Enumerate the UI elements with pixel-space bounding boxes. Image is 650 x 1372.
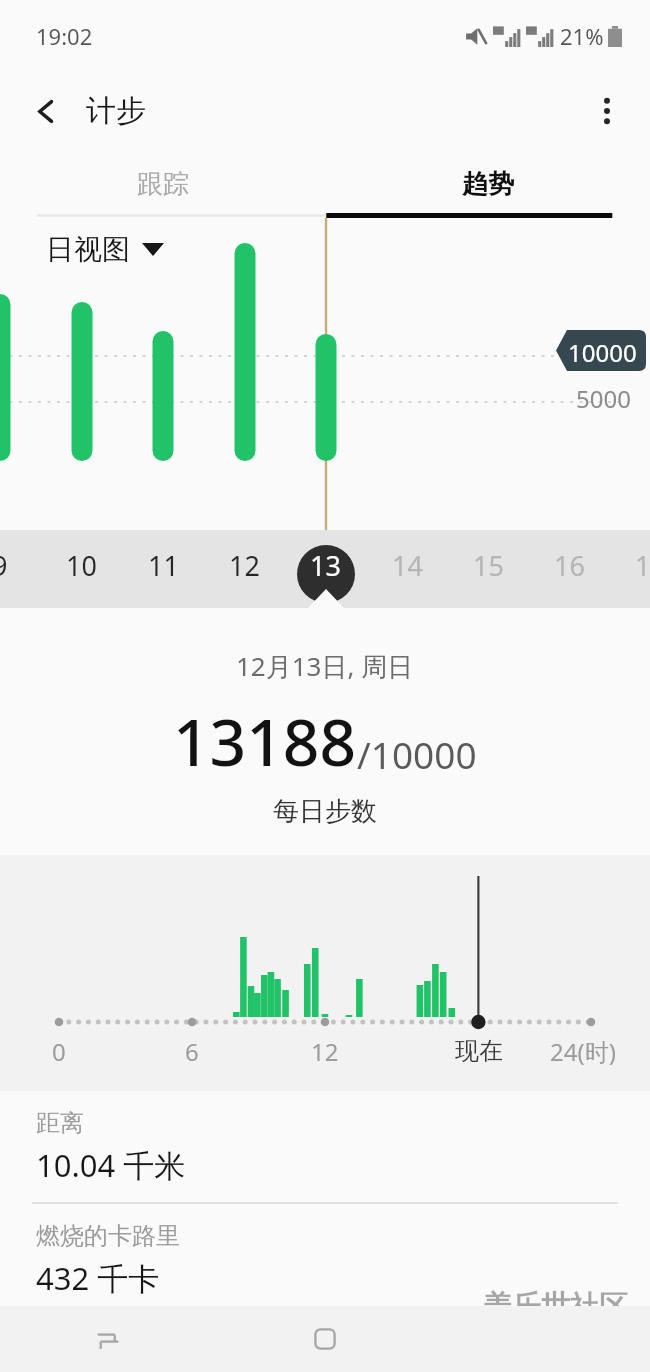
button[interactable]: 最近任务 xyxy=(0,1306,216,1372)
staticText: 趋势 xyxy=(462,168,514,201)
staticText: 10 xyxy=(66,547,97,584)
button[interactable]: 主页 xyxy=(216,1306,433,1372)
staticText: 24(时) xyxy=(550,1035,616,1068)
staticText: 5000 xyxy=(576,382,631,415)
staticText: 15 xyxy=(473,547,504,584)
staticText: 19:02 xyxy=(36,21,93,51)
button[interactable]: 9 xyxy=(0,530,40,600)
button[interactable]: 10 xyxy=(41,530,121,600)
button[interactable]: 更多选项 xyxy=(578,82,636,140)
staticText: 12 xyxy=(311,1035,339,1068)
staticText: 0 xyxy=(52,1035,66,1068)
staticText: 16 xyxy=(554,547,585,584)
staticText: 10.04 千米 xyxy=(36,1144,186,1186)
button[interactable]: 15 xyxy=(448,530,528,600)
staticText: 13 xyxy=(310,547,341,584)
staticText: 17 xyxy=(635,547,650,584)
staticText: 现在 xyxy=(455,1036,503,1066)
staticText: 11 xyxy=(148,547,179,584)
button[interactable]: 燃烧的卡路里 xyxy=(0,1204,650,1315)
staticText: 13188 xyxy=(173,698,357,785)
staticText: 12月13日, 周日 xyxy=(236,648,414,684)
staticText: 12 xyxy=(229,547,260,584)
button[interactable]: 13 xyxy=(285,530,365,600)
button[interactable]: 距离 xyxy=(0,1091,650,1204)
staticText: 每日步数 xyxy=(273,795,377,828)
button[interactable]: 趋势 xyxy=(325,150,650,218)
staticText: 10000 xyxy=(568,336,637,369)
staticText: 跟踪 xyxy=(137,168,189,201)
button[interactable]: 17 xyxy=(610,530,650,600)
button[interactable]: 16 xyxy=(529,530,609,600)
staticText: 距离 xyxy=(36,1108,84,1138)
button[interactable]: 返回 xyxy=(20,85,72,137)
button[interactable]: 14 xyxy=(367,530,447,600)
staticText: 盖乐世社区 xyxy=(483,1288,628,1325)
staticText: 6 xyxy=(185,1035,199,1068)
button[interactable]: 日视图 xyxy=(40,226,170,273)
staticText: 日视图 xyxy=(46,232,130,267)
staticText: 计步 xyxy=(86,92,146,130)
button[interactable]: 11 xyxy=(123,530,203,600)
staticText: 燃烧的卡路里 xyxy=(36,1221,180,1251)
staticText: 432 千卡 xyxy=(36,1257,160,1299)
staticText: 21% xyxy=(560,21,604,51)
staticText: 9 xyxy=(0,547,8,584)
button[interactable]: 跟踪 xyxy=(0,150,325,218)
staticText: 14 xyxy=(392,547,423,584)
button[interactable]: 12 xyxy=(204,530,284,600)
staticText: /10000 xyxy=(357,729,477,779)
